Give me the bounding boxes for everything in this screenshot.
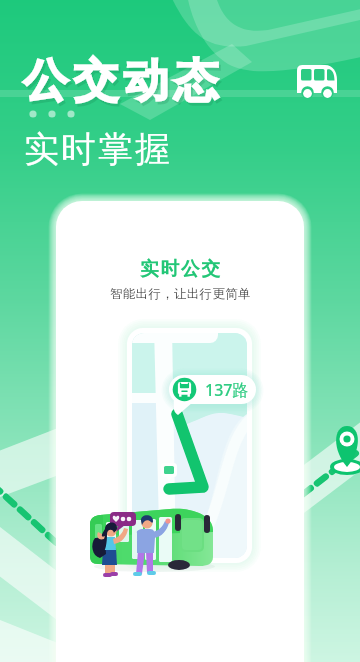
- staticText: 137路: [205, 379, 249, 401]
- staticText: 实时公交: [139, 257, 221, 280]
- staticText: 实时掌握: [23, 127, 171, 171]
- staticText: 公交动态: [23, 53, 224, 110]
- staticText: 公交动态: [25, 56, 226, 113]
- button[interactable]: 公交动态: [0, 0, 360, 662]
- button[interactable]: [170, 374, 258, 404]
- staticText: 智能出行，让出行更简单: [110, 286, 251, 302]
